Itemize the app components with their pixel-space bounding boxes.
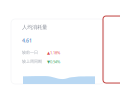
staticText: 较前一日	[22, 50, 38, 55]
button[interactable]: 人均消耗量	[11, 19, 104, 84]
staticText: 4.61	[22, 37, 32, 44]
staticText: 较上周同期	[22, 59, 42, 64]
staticText: ▲1.18%	[47, 50, 60, 55]
staticText: ▼0.94%	[47, 59, 60, 64]
staticText: 人均消耗量	[22, 24, 47, 31]
